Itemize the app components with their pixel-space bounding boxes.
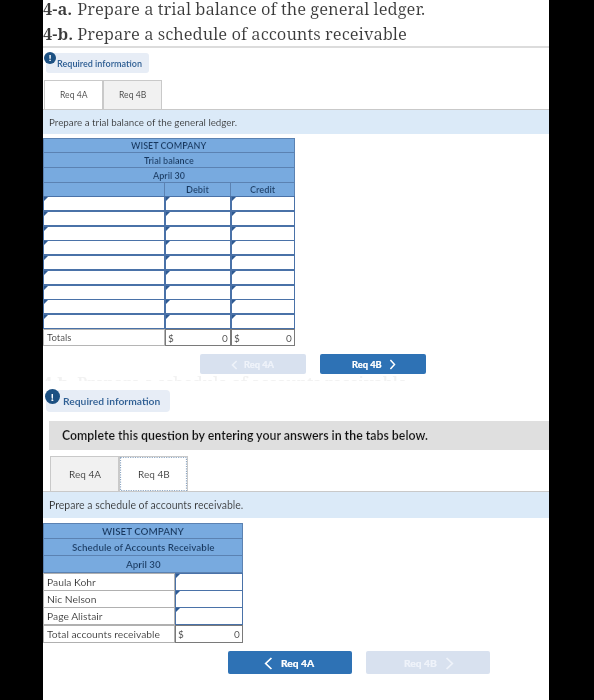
staticText: Req 4B [119,90,147,100]
staticText: Prepare a schedule of accounts receivabl… [73,371,407,381]
button[interactable] [175,573,243,591]
button[interactable] [165,314,231,329]
other: Required information [45,389,60,404]
button[interactable] [43,240,165,255]
staticText: ! [51,391,54,403]
button[interactable] [165,226,231,241]
button[interactable] [165,211,231,226]
staticText: 4-b. [43,22,73,44]
button[interactable] [231,240,295,255]
other: Required information [44,52,56,64]
staticText: Debit [186,184,209,195]
staticText: $ [178,628,184,640]
staticText: Req 4B [138,468,170,480]
button[interactable] [175,607,243,625]
button[interactable] [231,211,295,226]
staticText: 0 [286,332,292,344]
button[interactable] [231,270,295,285]
staticText: ! [49,53,52,63]
button[interactable]: Req 4B [320,354,426,374]
button[interactable] [165,240,231,255]
button[interactable] [231,285,295,300]
staticText: Req 4A [281,657,315,669]
staticText: Req 4A [244,359,275,370]
staticText: $ [234,332,240,344]
staticText: Req 4B [404,657,437,669]
staticText: April 30 [153,170,185,181]
button[interactable] [43,211,165,226]
button[interactable] [43,314,165,329]
staticText: Page Alistair [47,610,103,622]
staticText: Totals [47,332,72,344]
staticText: 4-a. [43,0,73,19]
staticText: Total accounts receivable [47,628,160,640]
staticText: Req 4A [60,90,88,100]
staticText: Prepare a schedule of accounts receivabl… [49,499,244,512]
staticText: April 30 [126,558,161,570]
button[interactable] [43,299,165,314]
staticText: Credit [250,184,276,195]
staticText: WISET COMPANY [131,140,207,151]
button[interactable] [231,255,295,270]
button[interactable]: Required information [46,390,170,412]
button[interactable] [165,270,231,285]
button[interactable] [165,299,231,314]
button[interactable] [231,299,295,314]
staticText: Required information [63,395,161,407]
staticText: Req 4A [69,468,101,480]
staticText: Schedule of Accounts Receivable [72,541,215,553]
button[interactable]: Req 4B [366,651,490,674]
staticText: 0 [222,332,228,344]
button[interactable]: Required information [46,53,149,73]
staticText: Prepare a trial balance of the general l… [73,0,426,19]
staticText: Complete this question by entering your … [62,428,428,443]
staticText: Paula Kohr [47,576,96,588]
button[interactable] [43,226,165,241]
button[interactable] [43,270,165,285]
button[interactable]: Req 4A [44,80,103,110]
staticText: Prepare a trial balance of the general l… [49,116,238,128]
button[interactable] [165,196,231,211]
staticText: Prepare a schedule of accounts receivabl… [73,22,407,44]
button[interactable] [43,255,165,270]
button[interactable]: Req 4A [228,651,352,674]
button[interactable] [165,285,231,300]
staticText: Required information [57,58,143,69]
button[interactable]: Req 4A [50,456,119,492]
staticText: 0 [234,628,240,640]
button[interactable] [165,255,231,270]
staticText: 4-b. [43,371,73,381]
staticText: WISET COMPANY [102,525,184,537]
staticText: $ [168,332,174,344]
button[interactable] [43,285,165,300]
button[interactable] [231,314,295,329]
button[interactable]: Req 4B [119,456,188,492]
button[interactable] [175,590,243,608]
button[interactable] [43,196,165,211]
button[interactable]: Req 4B [103,80,162,110]
button[interactable]: Req 4A [200,354,306,374]
staticText: Trial balance [144,155,194,166]
staticText: Req 4B [352,359,382,370]
button[interactable] [231,226,295,241]
button[interactable] [231,196,295,211]
staticText: Nic Nelson [47,593,97,605]
